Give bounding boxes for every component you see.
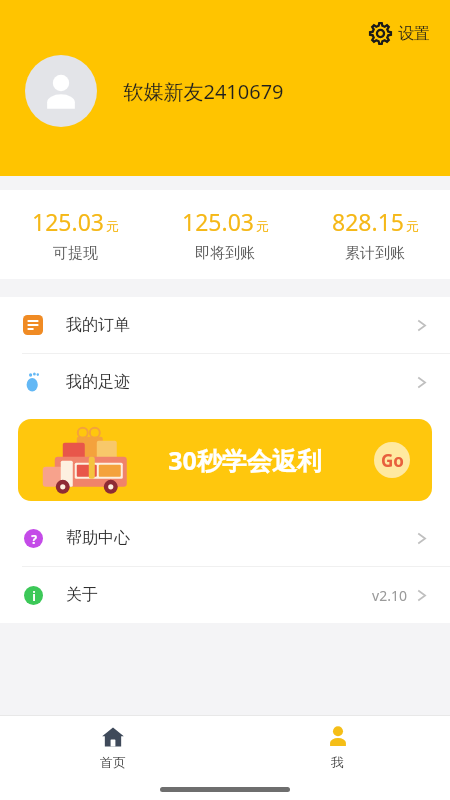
button[interactable]: 125.03 [150, 206, 300, 263]
staticText: 首页 [100, 754, 126, 770]
button[interactable]: 125.03 [0, 206, 150, 263]
staticText: 我的订单 [66, 315, 130, 335]
button[interactable]: Settings [366, 20, 434, 47]
staticText: 软媒新友2410679 [123, 78, 284, 105]
button[interactable]: 30秒学会返利 [18, 419, 432, 501]
staticText: Go [381, 449, 404, 472]
staticText: 30秒学会返利 [168, 443, 322, 477]
other: Settings [370, 23, 391, 44]
staticText: 帮助中心 [66, 528, 130, 548]
button[interactable]: 软媒新友2410679 [25, 55, 284, 127]
other: 首页 [101, 725, 125, 749]
button[interactable]: 我的足迹 [0, 354, 450, 410]
staticText: 可提现 [53, 244, 98, 263]
button[interactable]: 首页 [0, 716, 225, 778]
button[interactable]: 828.15 [300, 206, 450, 263]
staticText: 我 [331, 754, 344, 770]
staticText: 累计到账 [345, 244, 405, 263]
button[interactable]: ? [0, 510, 450, 566]
staticText: 125.03 [32, 206, 104, 237]
button[interactable]: i [0, 567, 450, 623]
staticText: 元 [256, 218, 269, 234]
staticText: 我的足迹 [66, 372, 130, 392]
staticText: i [32, 588, 36, 604]
staticText: 828.15 [332, 206, 404, 237]
staticText: 125.03 [182, 206, 254, 237]
staticText: 设置 [398, 24, 430, 44]
button[interactable]: 我 [225, 716, 450, 778]
staticText: 元 [106, 218, 119, 234]
staticText: 关于 [66, 585, 98, 605]
staticText: 元 [406, 218, 419, 234]
other: 我 [326, 725, 350, 749]
staticText: v2.10 [372, 586, 407, 605]
button[interactable]: 我的订单 [0, 297, 450, 353]
staticText: ? [31, 531, 37, 547]
staticText: 即将到账 [195, 244, 255, 263]
